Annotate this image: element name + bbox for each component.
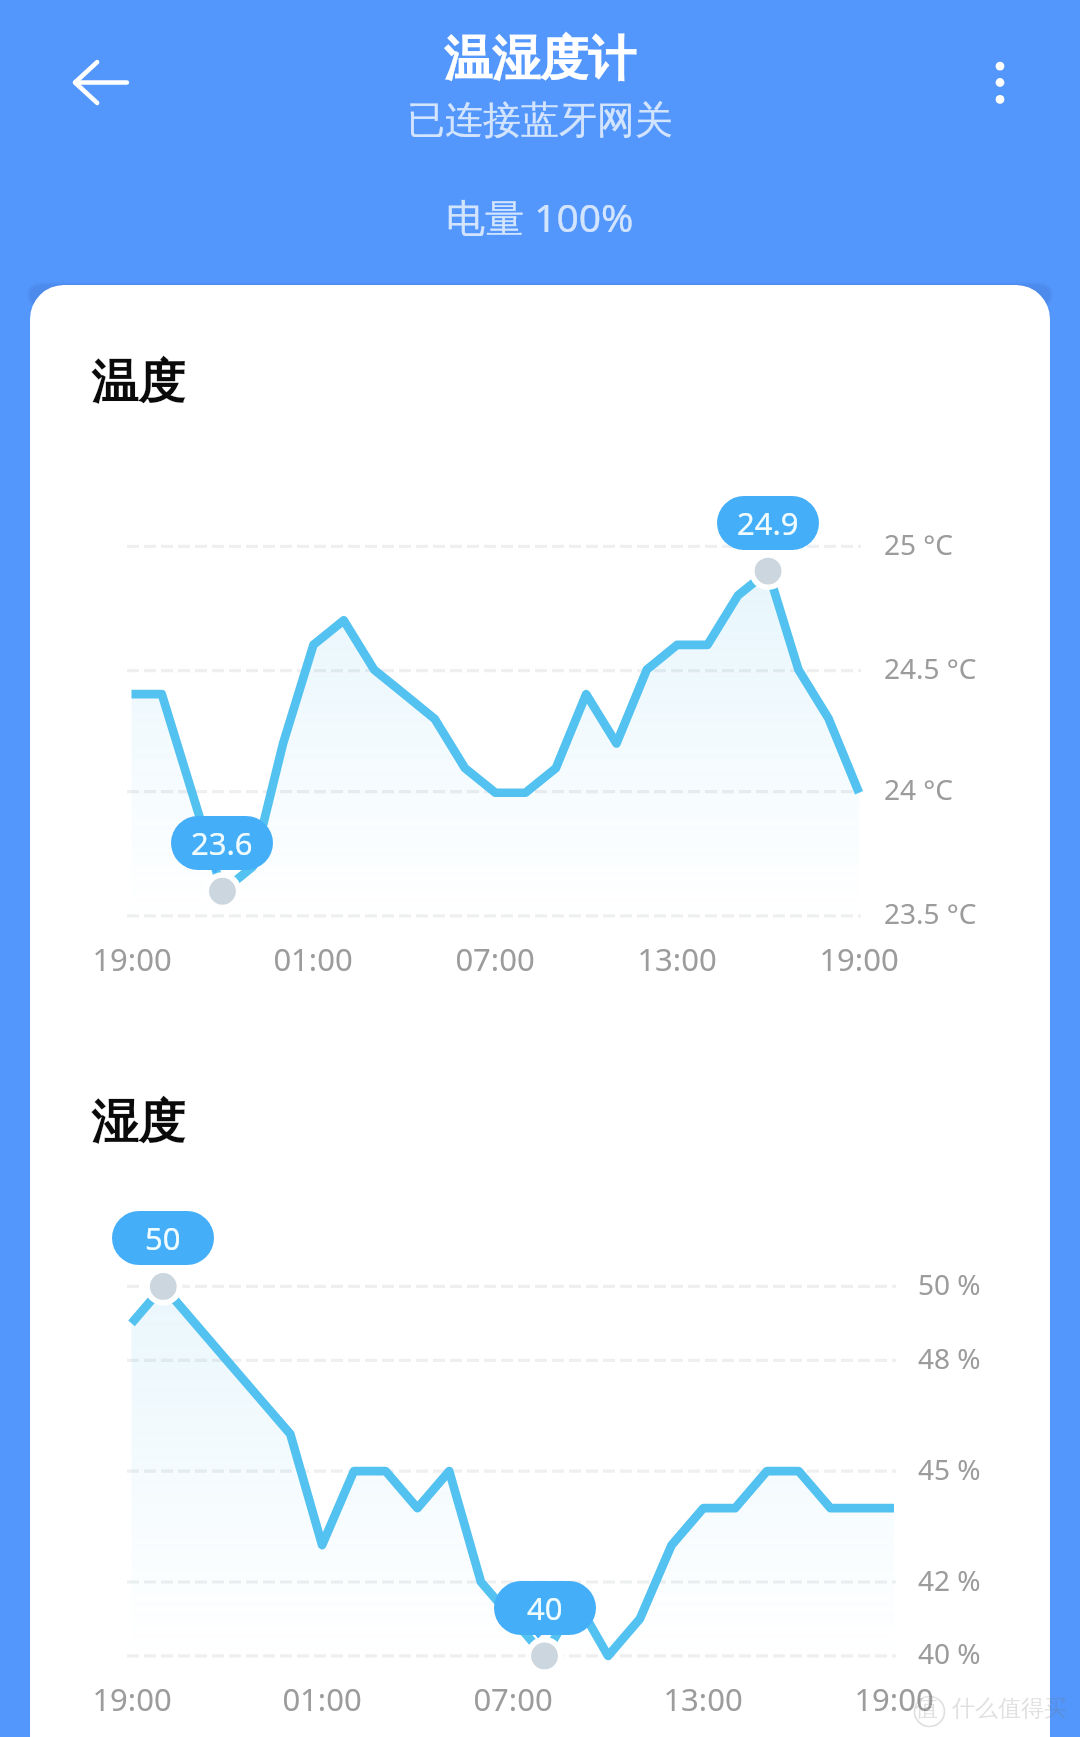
- button[interactable]: More options: [955, 38, 1045, 128]
- staticText: 25 °C: [884, 525, 953, 563]
- staticText: 40: [527, 1587, 563, 1629]
- staticText: 13:00: [607, 938, 747, 980]
- staticText: 50: [145, 1217, 181, 1259]
- staticText: 湿度: [91, 1093, 185, 1152]
- staticText: 温湿度计: [444, 29, 636, 89]
- staticText: 温度: [91, 353, 185, 412]
- staticText: 01:00: [252, 1678, 392, 1720]
- staticText: 48 %: [918, 1339, 981, 1377]
- staticText: 什么值得买: [952, 1694, 1067, 1723]
- button[interactable]: Back: [55, 37, 145, 127]
- staticText: 24 °C: [884, 770, 953, 808]
- staticText: 45 %: [918, 1450, 981, 1488]
- staticText: 13:00: [633, 1678, 773, 1720]
- staticText: 19:00: [62, 1678, 202, 1720]
- staticText: 23.5 °C: [884, 894, 977, 932]
- staticText: 23.6: [191, 822, 253, 864]
- staticText: 42 %: [918, 1561, 981, 1599]
- staticText: 07:00: [425, 938, 565, 980]
- staticText: 50 %: [918, 1265, 981, 1303]
- staticText: 值: [915, 1694, 938, 1723]
- staticText: 19:00: [789, 938, 929, 980]
- staticText: 01:00: [243, 938, 383, 980]
- staticText: 19:00: [62, 938, 202, 980]
- staticText: 24.5 °C: [884, 649, 977, 687]
- staticText: 已连接蓝牙网关: [407, 96, 673, 144]
- staticText: 24.9: [737, 502, 799, 544]
- staticText: 07:00: [443, 1678, 583, 1720]
- staticText: 40 %: [918, 1634, 981, 1672]
- staticText: 19:00: [824, 1678, 964, 1720]
- staticText: 电量 100%: [446, 190, 634, 243]
